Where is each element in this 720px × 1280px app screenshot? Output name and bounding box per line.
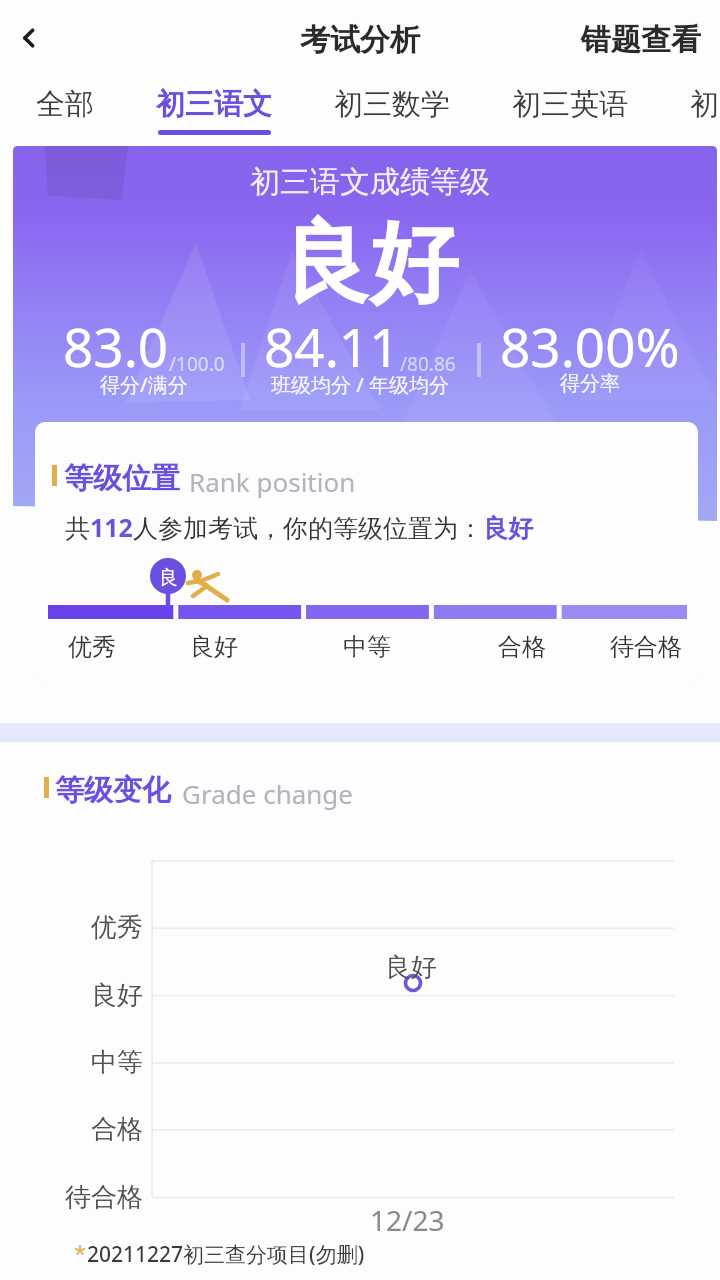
staticText: 良好 <box>385 951 437 984</box>
staticText: 全部 <box>36 86 94 123</box>
staticText: 良 <box>159 566 178 590</box>
button[interactable]: 初三英语 <box>481 75 659 123</box>
staticText: 班级均分 / 年级均分 <box>271 371 450 398</box>
staticText: 考试分析 <box>300 21 420 59</box>
staticText: 优秀 <box>68 632 116 662</box>
staticText: 合格 <box>498 632 546 662</box>
staticText: Rank position <box>189 464 356 499</box>
staticText: /80.86 <box>400 351 456 377</box>
staticText: 初三数学 <box>334 86 450 123</box>
button[interactable]: Back <box>5 14 53 62</box>
staticText: 错题查看 <box>581 21 701 59</box>
staticText: 84.11 <box>264 310 400 382</box>
staticText: 待合格 <box>610 632 682 662</box>
staticText: /100.0 <box>169 351 225 377</box>
staticText: 等级变化 <box>55 772 171 809</box>
staticText: 良好 <box>282 208 458 319</box>
staticText: 83.00% <box>500 310 680 382</box>
staticText: 得分/满分 <box>100 371 188 398</box>
staticText: 共112人参加考试，你的等级位置为：良好 <box>65 510 533 544</box>
staticText: 20211227初三查分项目(勿删) <box>87 1240 365 1269</box>
button[interactable]: 初三语文 <box>125 75 303 135</box>
staticText: Grade change <box>182 776 354 811</box>
staticText: 良好 <box>91 979 143 1012</box>
staticText: 得分率 <box>560 371 620 396</box>
staticText: 初三语文成绩等级 <box>250 163 490 201</box>
staticText: 12/23 <box>370 1201 445 1239</box>
staticText: 初三语文 <box>156 86 272 123</box>
staticText: 优秀 <box>91 911 143 944</box>
staticText: 中等 <box>343 632 391 662</box>
button[interactable]: 全部 <box>5 75 125 123</box>
button[interactable]: 初三数学 <box>303 75 481 123</box>
staticText: 83.0 <box>63 310 169 382</box>
staticText: 初三英语 <box>512 86 628 123</box>
button[interactable]: 初 <box>659 75 720 123</box>
staticText: 待合格 <box>65 1181 143 1214</box>
staticText: * <box>74 1237 87 1267</box>
staticText: 等级位置 <box>64 460 180 497</box>
staticText: 中等 <box>91 1046 143 1079</box>
staticText: 合格 <box>91 1113 143 1146</box>
staticText: 良好 <box>190 632 238 662</box>
button[interactable]: 错题查看 <box>562 9 720 71</box>
